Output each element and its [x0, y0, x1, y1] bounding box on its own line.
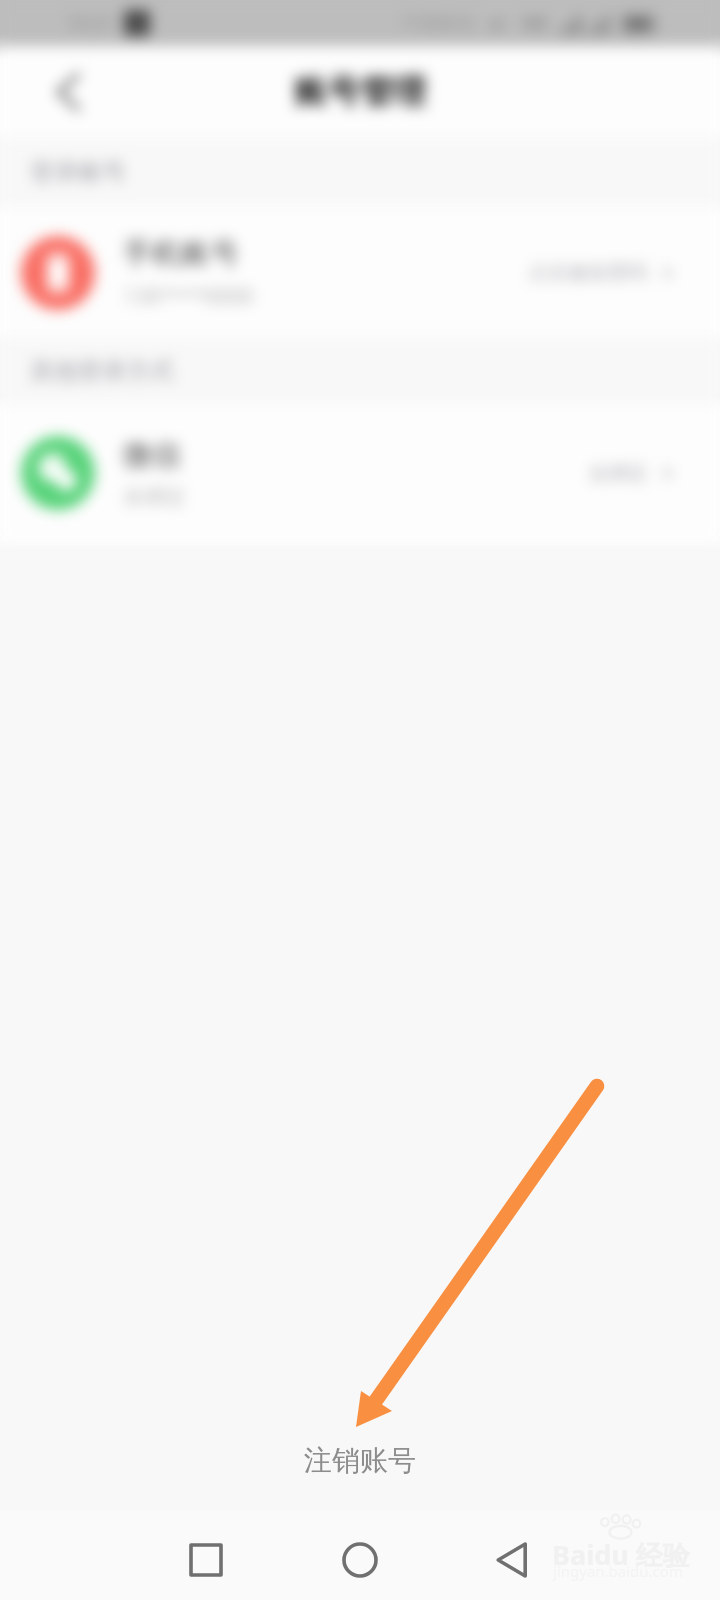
staticText: 点击修改密码 [528, 260, 648, 285]
button[interactable]: 微信 [0, 404, 720, 542]
staticText: 手机账号 [123, 235, 239, 272]
button[interactable]: Back [38, 62, 98, 122]
button[interactable]: Back [477, 1525, 547, 1595]
staticText: 其他登录方式 [30, 356, 174, 386]
staticText: 登录账号 [30, 157, 126, 187]
staticText: jingyan.baidu.com [553, 1561, 683, 1581]
staticText: 注销账号 [304, 1443, 416, 1478]
staticText: 138****8888 [123, 282, 254, 311]
staticText: 账号管理 [294, 71, 426, 113]
staticText: 微信 [123, 437, 181, 474]
button[interactable]: Home [325, 1525, 395, 1595]
staticText: Baidu 经验 [552, 1536, 690, 1573]
staticText: HD [522, 12, 548, 35]
button[interactable]: Recents [171, 1525, 241, 1595]
button[interactable]: 手机账号 [0, 207, 720, 338]
staticText: 未绑定 [123, 484, 186, 510]
staticText: 去绑定 [588, 461, 648, 486]
